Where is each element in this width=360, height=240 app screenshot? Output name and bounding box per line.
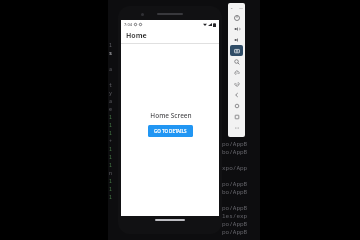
staticText: les/exp (222, 212, 248, 220)
staticText: l (109, 42, 113, 50)
button[interactable]: Zoom (230, 56, 243, 67)
button[interactable]: Screenshot (230, 45, 243, 56)
staticText: GO TO DETAILS (154, 128, 187, 134)
staticText: e (109, 106, 113, 114)
staticText: bo/AppB (222, 188, 248, 196)
button[interactable]: Home (230, 100, 243, 111)
button[interactable]: Volume down (230, 34, 243, 45)
button[interactable]: More (230, 122, 243, 133)
button[interactable]: Home (121, 29, 219, 43)
staticText: xpo/App (222, 164, 248, 172)
staticText: l (109, 114, 113, 122)
staticText: ⌄ (230, 5, 234, 10)
button[interactable]: Back (230, 89, 243, 100)
button[interactable]: GO TO DETAILS (148, 125, 193, 137)
staticText: l (109, 178, 113, 186)
staticText: bo/AppB (222, 148, 248, 156)
staticText: 7:04 (124, 22, 132, 27)
button[interactable]: Power (230, 12, 243, 23)
staticText: l (109, 194, 113, 202)
button[interactable]: Rotate right (230, 78, 243, 89)
staticText: Home Screen (150, 111, 192, 120)
staticText: po/AppB (222, 228, 248, 236)
staticText: l (109, 154, 113, 162)
staticText: n (109, 170, 113, 178)
button[interactable]: Rotate left (230, 67, 243, 78)
staticText: y (109, 90, 113, 98)
button[interactable]: Volume up (230, 23, 243, 34)
staticText: a (109, 66, 113, 74)
staticText: a (109, 98, 113, 106)
button[interactable]: Overview (230, 111, 243, 122)
staticText: + (109, 138, 113, 146)
staticText: po/AppB (222, 140, 248, 148)
staticText: l (109, 130, 113, 138)
staticText: po/AppB (222, 220, 248, 228)
staticText: l (109, 186, 113, 194)
staticText: t (109, 82, 113, 90)
staticText: po/AppB (222, 204, 248, 212)
staticText: l (109, 162, 113, 170)
staticText: — (239, 5, 243, 10)
staticText: Home (126, 31, 147, 41)
staticText: s (109, 50, 113, 58)
staticText: l (109, 146, 113, 154)
staticText: l (109, 122, 113, 130)
staticText: po/AppB (222, 180, 248, 188)
